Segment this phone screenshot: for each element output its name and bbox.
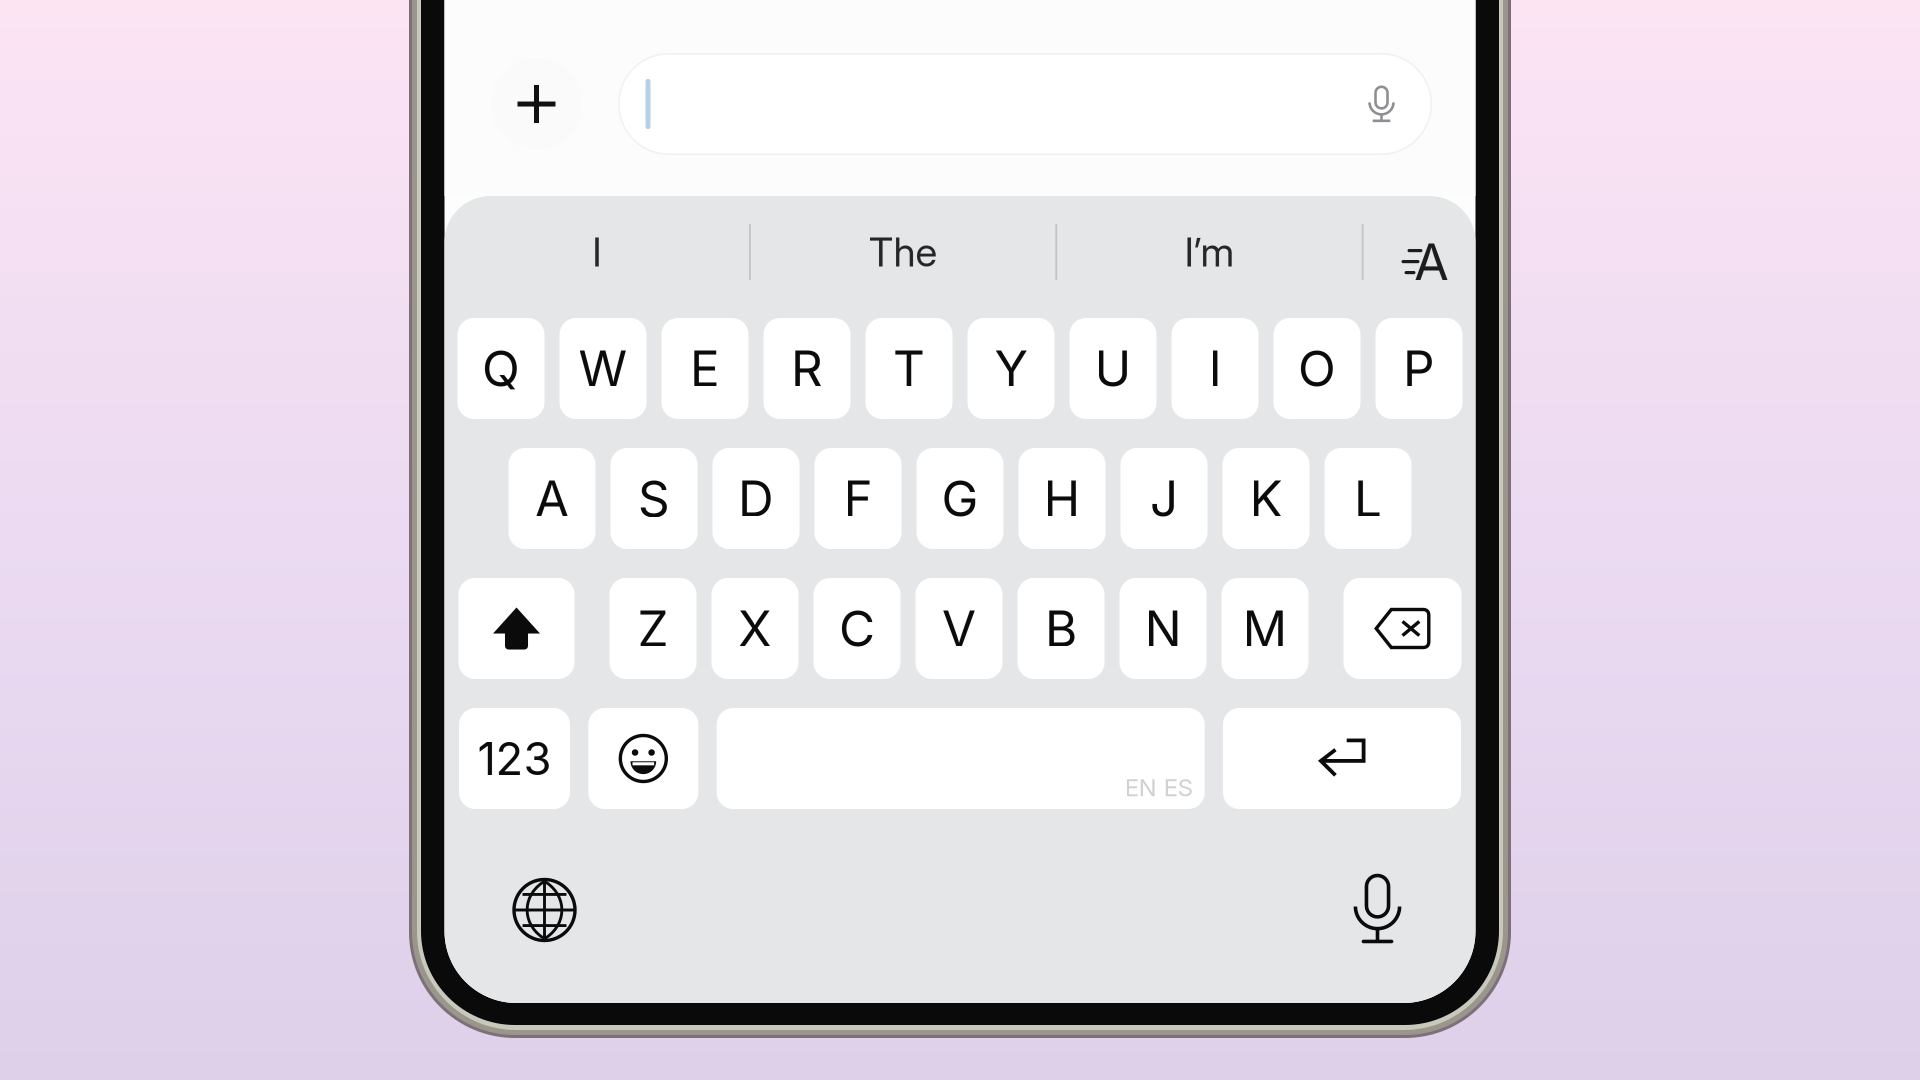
button[interactable]: X — [711, 578, 798, 679]
staticText: S — [638, 469, 670, 528]
staticText: A — [1414, 231, 1449, 293]
staticText: I — [592, 228, 601, 276]
button[interactable]: I — [444, 196, 749, 308]
button[interactable]: U — [1069, 318, 1156, 419]
staticText: C — [839, 599, 875, 658]
staticText: T — [893, 339, 925, 398]
staticText: B — [1045, 599, 1077, 658]
staticText: D — [738, 469, 774, 528]
button[interactable]: Z — [609, 578, 696, 679]
button[interactable]: Q — [457, 318, 544, 419]
staticText: M — [1242, 599, 1287, 658]
button[interactable]: V — [915, 578, 1002, 679]
staticText: P — [1403, 339, 1435, 398]
staticText: A — [535, 469, 569, 528]
button[interactable]: D — [712, 448, 799, 549]
button[interactable]: T — [865, 318, 952, 419]
staticText: Y — [994, 339, 1027, 398]
staticText: I’m — [1184, 228, 1234, 276]
button[interactable]: Shift — [458, 578, 574, 679]
button[interactable]: C — [813, 578, 900, 679]
button[interactable]: Text formatting — [1363, 196, 1475, 308]
button[interactable]: O — [1273, 318, 1360, 419]
staticText: E — [690, 339, 720, 398]
button[interactable]: B — [1017, 578, 1104, 679]
staticText: O — [1298, 339, 1336, 398]
staticText: W — [578, 339, 627, 398]
staticText: R — [791, 339, 823, 398]
button[interactable]: Add — [490, 58, 582, 150]
staticText: G — [941, 469, 978, 528]
button[interactable]: Delete — [1343, 578, 1461, 679]
button[interactable]: Dictation — [1334, 867, 1420, 953]
button[interactable]: R — [763, 318, 850, 419]
staticText: X — [738, 599, 772, 658]
button[interactable]: EN ES — [717, 708, 1205, 809]
button[interactable]: P — [1375, 318, 1462, 419]
button[interactable]: F — [814, 448, 901, 549]
button[interactable]: I’m — [1057, 196, 1362, 308]
staticText: F — [843, 469, 872, 528]
button[interactable]: G — [916, 448, 1003, 549]
button[interactable]: I — [1171, 318, 1258, 419]
button[interactable]: Next keyboard — [501, 867, 587, 953]
button[interactable]: N — [1119, 578, 1206, 679]
button[interactable]: E — [661, 318, 748, 419]
staticText: EN ES — [1125, 773, 1193, 802]
button[interactable]: H — [1018, 448, 1105, 549]
staticText: J — [1150, 469, 1178, 528]
staticText: K — [1249, 469, 1282, 528]
button[interactable]: K — [1222, 448, 1309, 549]
staticText: The — [869, 228, 938, 276]
button[interactable]: M — [1221, 578, 1308, 679]
button[interactable]: J — [1120, 448, 1207, 549]
staticText: I — [1208, 339, 1221, 398]
button[interactable]: W — [559, 318, 646, 419]
staticText: U — [1094, 339, 1131, 398]
button[interactable]: Return — [1223, 708, 1461, 809]
button[interactable]: A — [508, 448, 595, 549]
staticText: Z — [637, 599, 668, 658]
button[interactable]: L — [1324, 448, 1411, 549]
button[interactable]: 123 — [459, 708, 570, 809]
button[interactable]: Emoji — [588, 708, 698, 809]
button[interactable]: Y — [967, 318, 1054, 419]
staticText: Q — [482, 339, 520, 398]
staticText: L — [1354, 469, 1382, 528]
staticText: 123 — [477, 731, 551, 786]
staticText: H — [1043, 469, 1080, 528]
button[interactable]: S — [610, 448, 697, 549]
staticText: V — [942, 599, 976, 658]
staticText: N — [1144, 599, 1181, 658]
button[interactable]: The — [751, 196, 1055, 308]
